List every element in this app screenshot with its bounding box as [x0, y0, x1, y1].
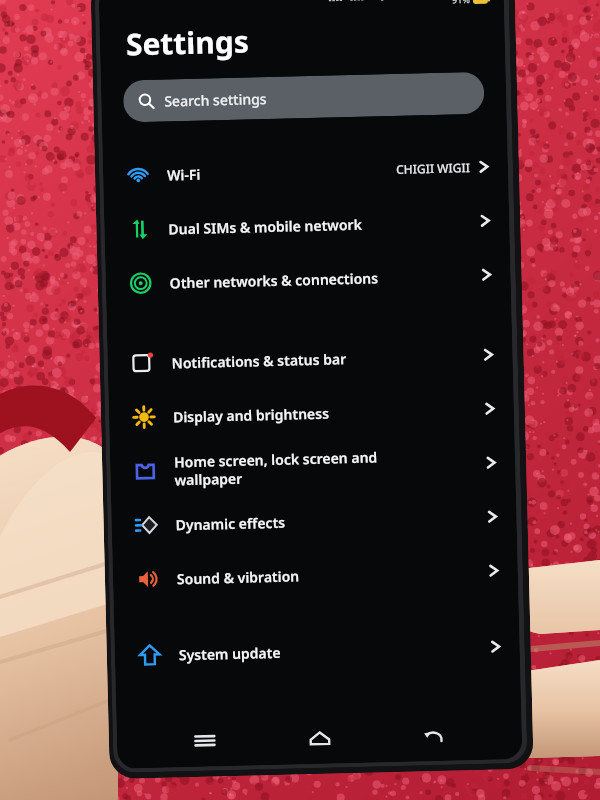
staticText: CHIGII WIGII	[396, 159, 470, 177]
button[interactable]: Dynamic effects	[111, 489, 517, 553]
button[interactable]: Home	[292, 715, 347, 761]
staticText: Other networks & connections	[169, 266, 481, 292]
staticText: System update	[179, 638, 490, 664]
staticText: Sound & vibration	[177, 562, 488, 588]
button[interactable]: Notifications & status bar	[107, 327, 513, 391]
button[interactable]: Other networks & connections	[105, 247, 511, 311]
staticText: Dual SIMs & mobile network	[168, 212, 480, 238]
button[interactable]: Recent apps	[177, 718, 232, 763]
staticText: Search settings	[164, 89, 267, 110]
staticText: Notifications & status bar	[171, 346, 483, 372]
staticText: Home screen, lock screen and wallpaper	[174, 445, 486, 489]
button[interactable]: Sound & vibration	[112, 543, 518, 607]
button[interactable]: System update	[114, 619, 520, 683]
staticText: 91%	[452, 0, 470, 5]
button[interactable]: Home screen, lock screen and wallpaper	[110, 435, 516, 499]
button[interactable]: Search settings	[123, 72, 485, 122]
staticText: Wi-Fi	[167, 160, 396, 184]
staticText: Dynamic effects	[175, 508, 487, 534]
staticText: Display and brightness	[173, 400, 484, 426]
button[interactable]: Wi-Fi	[102, 139, 509, 203]
staticText: Settings	[125, 20, 249, 64]
button[interactable]: Back	[406, 712, 461, 758]
button[interactable]: Dual SIMs & mobile network	[104, 193, 510, 257]
button[interactable]: Display and brightness	[108, 381, 515, 445]
